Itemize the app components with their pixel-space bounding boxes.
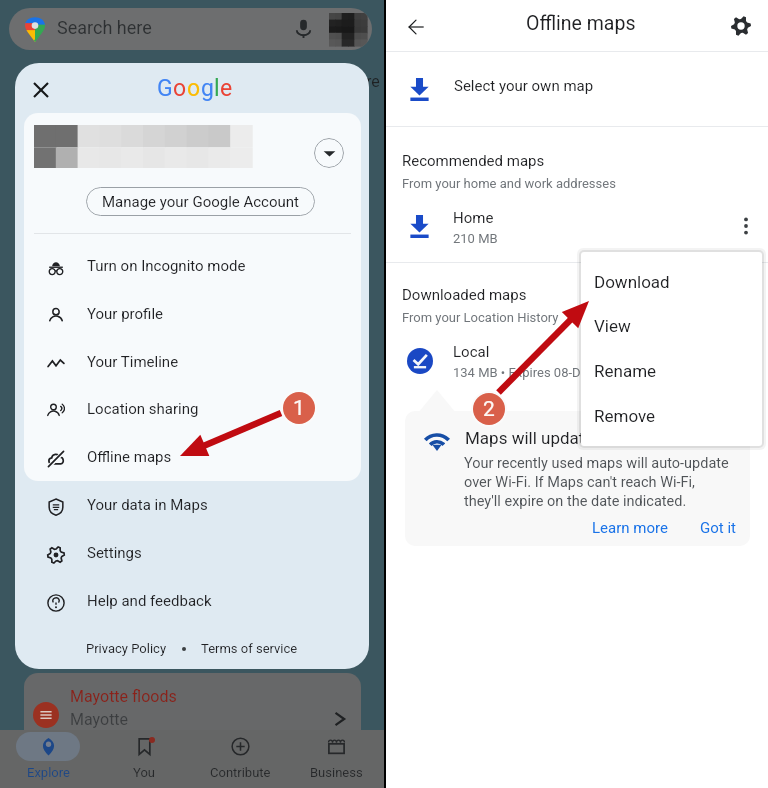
- staticText: 134 MB • Expires 08-De: [453, 365, 588, 380]
- button[interactable]: Settings: [15, 531, 369, 579]
- button[interactable]: Back: [408, 19, 424, 35]
- staticText: Remove: [594, 406, 656, 426]
- button[interactable]: Privacy Policy: [86, 641, 167, 656]
- staticText: Manage your Google Account: [102, 193, 299, 211]
- staticText: Turn on Incognito mode: [87, 257, 246, 275]
- button[interactable]: Search here: [9, 8, 372, 50]
- staticText: Maps will update over Wi-Fi: [465, 428, 672, 448]
- button[interactable]: Help and feedback: [15, 579, 369, 627]
- staticText: Offline maps: [87, 448, 172, 466]
- button[interactable]: Explore: [0, 730, 96, 788]
- staticText: Select your own map: [454, 77, 594, 95]
- staticText: Mayotte: [70, 710, 129, 729]
- staticText: Offline maps: [526, 12, 636, 35]
- button[interactable]: Settings: [731, 16, 751, 36]
- staticText: Search here: [57, 17, 152, 38]
- button[interactable]: Turn on Incognito mode: [15, 244, 369, 292]
- button[interactable]: View: [581, 304, 762, 348]
- staticText: Your Timeline: [87, 353, 179, 371]
- button[interactable]: Offline maps: [15, 435, 369, 483]
- staticText: l: [214, 75, 220, 102]
- staticText: View: [594, 316, 631, 336]
- staticText: Contribute: [210, 765, 271, 780]
- button[interactable]: Home: [386, 203, 768, 251]
- staticText: Gre: [355, 72, 380, 91]
- button[interactable]: Select your own map: [386, 52, 768, 126]
- staticText: Rename: [594, 361, 657, 381]
- staticText: o: [187, 75, 201, 102]
- button[interactable]: Expand account list: [314, 138, 344, 168]
- staticText: Local: [453, 343, 490, 361]
- button[interactable]: Your Timeline: [15, 340, 369, 388]
- button[interactable]: More options: [736, 216, 756, 236]
- staticText: Home: [453, 209, 494, 227]
- staticText: Download: [594, 272, 670, 292]
- button[interactable]: Terms of service: [201, 641, 298, 656]
- staticText: they'll expire on the date indicated.: [464, 493, 687, 510]
- staticText: From your Location History: [402, 310, 559, 325]
- staticText: Explore: [27, 765, 70, 780]
- button[interactable]: Download: [581, 260, 762, 304]
- button[interactable]: Business: [288, 730, 384, 788]
- staticText: G: [157, 75, 173, 102]
- staticText: You: [133, 765, 155, 780]
- staticText: 1: [293, 396, 305, 421]
- staticText: g: [201, 75, 214, 102]
- staticText: Downloaded maps: [402, 286, 527, 304]
- button[interactable]: Location sharing: [15, 387, 369, 435]
- button[interactable]: Your data in Maps: [15, 483, 369, 531]
- button[interactable]: Remove: [581, 394, 762, 438]
- staticText: Your data in Maps: [87, 496, 208, 514]
- staticText: o: [173, 75, 187, 102]
- staticText: Settings: [87, 544, 142, 562]
- staticText: 2: [483, 397, 495, 422]
- button[interactable]: Your profile: [15, 292, 369, 340]
- staticText: Help and feedback: [87, 592, 212, 610]
- staticText: From your home and work addresses: [402, 176, 616, 191]
- staticText: over Wi-Fi. If Maps can't reach Wi-Fi,: [464, 474, 695, 491]
- staticText: 210 MB: [453, 231, 498, 246]
- button[interactable]: Contribute: [192, 730, 288, 788]
- button[interactable]: Manage your Google Account: [86, 187, 315, 216]
- staticText: e: [220, 75, 233, 102]
- staticText: Mayotte floods: [70, 687, 177, 706]
- staticText: Business: [310, 765, 363, 780]
- staticText: Recommended maps: [402, 152, 545, 170]
- staticText: Your recently used maps will auto-update: [464, 455, 729, 472]
- staticText: Your profile: [87, 305, 163, 323]
- button[interactable]: Learn more: [592, 519, 668, 537]
- button[interactable]: Got it: [700, 519, 736, 537]
- button[interactable]: Close: [34, 83, 48, 97]
- button[interactable]: Rename: [581, 349, 762, 393]
- button[interactable]: Local: [386, 337, 768, 385]
- button[interactable]: You: [96, 730, 192, 788]
- staticText: Location sharing: [87, 400, 199, 418]
